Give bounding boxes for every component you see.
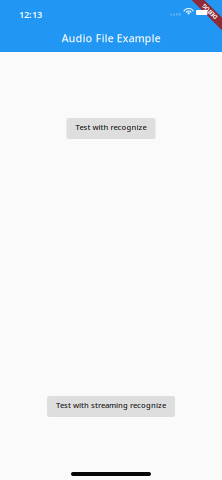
staticText: Test with streaming recognize xyxy=(56,400,166,410)
staticText: DEBUG xyxy=(200,8,219,16)
staticText: Audio File Example xyxy=(61,31,160,45)
button[interactable]: Test with recognize xyxy=(66,118,155,139)
staticText: 12:13 xyxy=(19,8,42,21)
button[interactable]: Test with streaming recognize xyxy=(47,396,175,417)
staticText: Test with recognize xyxy=(75,122,146,132)
